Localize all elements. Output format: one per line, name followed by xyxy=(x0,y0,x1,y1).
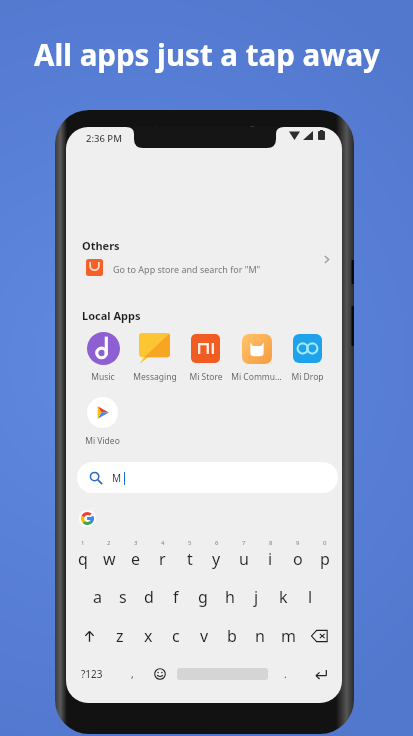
staticText: g xyxy=(198,586,208,608)
staticText: M xyxy=(112,471,122,485)
button[interactable]: k xyxy=(270,586,297,608)
button[interactable]: m xyxy=(274,625,302,647)
staticText: Mi Video xyxy=(85,435,120,447)
button[interactable]: 3 xyxy=(122,539,149,570)
button[interactable]: a xyxy=(84,586,110,608)
staticText: h xyxy=(225,586,235,608)
button[interactable]: 7 xyxy=(230,539,257,570)
staticText: p xyxy=(320,548,330,570)
staticText: , xyxy=(131,667,134,681)
staticText: Mi Drop xyxy=(291,371,324,383)
staticText: 2 xyxy=(107,539,111,547)
staticText: All apps just a tap away xyxy=(34,34,380,74)
staticText: 4 xyxy=(161,539,165,547)
staticText: k xyxy=(279,586,288,608)
staticText: Messaging xyxy=(133,371,177,383)
button[interactable]: x xyxy=(134,625,162,647)
button[interactable]: d xyxy=(136,586,162,608)
staticText: Mi Commun... xyxy=(231,371,282,383)
staticText: e xyxy=(131,548,141,570)
button[interactable]: l xyxy=(297,586,324,608)
staticText: v xyxy=(200,625,209,647)
button[interactable]: s xyxy=(110,586,136,608)
staticText: x xyxy=(144,625,153,647)
staticText: i xyxy=(268,548,273,570)
button[interactable]: 6 xyxy=(203,539,230,570)
staticText: d xyxy=(144,586,154,608)
button[interactable]: Mi Drop xyxy=(282,332,333,383)
staticText: 1 xyxy=(81,539,85,547)
staticText: 0 xyxy=(323,539,327,547)
button[interactable]: Music xyxy=(77,332,129,383)
button[interactable]: Mi Commun... xyxy=(231,332,282,383)
button[interactable]: v xyxy=(190,625,218,647)
staticText: 2:36 PM xyxy=(86,132,122,145)
staticText: 3 xyxy=(134,539,138,547)
button[interactable]: 0 xyxy=(311,539,338,570)
staticText: 7 xyxy=(242,539,246,547)
button[interactable]: b xyxy=(218,625,246,647)
staticText: b xyxy=(227,625,237,647)
staticText: t xyxy=(187,548,193,570)
button[interactable]: Go to App store and search for "M" xyxy=(66,254,342,282)
staticText: Music xyxy=(91,371,115,383)
button[interactable]: 5 xyxy=(176,539,203,570)
button[interactable]: Backspace xyxy=(302,630,336,642)
button[interactable]: j xyxy=(243,586,270,608)
button[interactable]: Emoji xyxy=(146,668,174,680)
staticText: l xyxy=(308,586,313,608)
staticText: Local Apps xyxy=(82,308,141,323)
button[interactable]: , xyxy=(118,667,146,681)
button[interactable]: c xyxy=(162,625,190,647)
staticText: ?123 xyxy=(81,667,103,681)
staticText: s xyxy=(119,586,127,608)
button[interactable]: n xyxy=(246,625,274,647)
staticText: u xyxy=(239,548,249,570)
button[interactable]: g xyxy=(189,586,216,608)
button[interactable]: ?123 xyxy=(66,667,118,681)
staticText: w xyxy=(103,548,116,570)
button[interactable]: Enter xyxy=(299,667,342,681)
staticText: Others xyxy=(82,238,120,253)
button[interactable]: 9 xyxy=(284,539,311,570)
staticText: 5 xyxy=(188,539,192,547)
staticText: f xyxy=(173,586,179,608)
other: Open App store xyxy=(321,254,332,265)
button[interactable]: . xyxy=(271,667,299,681)
button[interactable]: Mi Video xyxy=(77,396,128,447)
staticText: j xyxy=(254,586,259,608)
staticText: c xyxy=(172,625,180,647)
button[interactable]: h xyxy=(216,586,243,608)
staticText: y xyxy=(212,548,221,570)
button[interactable]: Mi Store xyxy=(180,332,231,383)
button[interactable]: 8 xyxy=(257,539,284,570)
button[interactable]: Google xyxy=(79,510,96,527)
staticText: z xyxy=(116,625,124,647)
button[interactable]: Shift xyxy=(72,630,106,643)
staticText: 9 xyxy=(296,539,300,547)
staticText: Go to App store and search for "M" xyxy=(113,263,261,275)
staticText: a xyxy=(93,586,102,608)
staticText: q xyxy=(78,548,88,570)
staticText: 6 xyxy=(215,539,219,547)
button[interactable]: f xyxy=(162,586,189,608)
staticText: . xyxy=(284,667,287,681)
button[interactable]: M xyxy=(77,462,338,493)
button[interactable]: z xyxy=(106,625,134,647)
staticText: n xyxy=(255,625,265,647)
button[interactable]: 1 xyxy=(70,539,96,570)
button[interactable]: 4 xyxy=(149,539,176,570)
staticText: r xyxy=(159,548,166,570)
button[interactable]: 2 xyxy=(96,539,122,570)
staticText: 8 xyxy=(269,539,273,547)
staticText: Mi Store xyxy=(189,371,223,383)
staticText: m xyxy=(281,625,296,647)
button[interactable]: Messaging xyxy=(129,332,180,383)
staticText: o xyxy=(293,548,303,570)
